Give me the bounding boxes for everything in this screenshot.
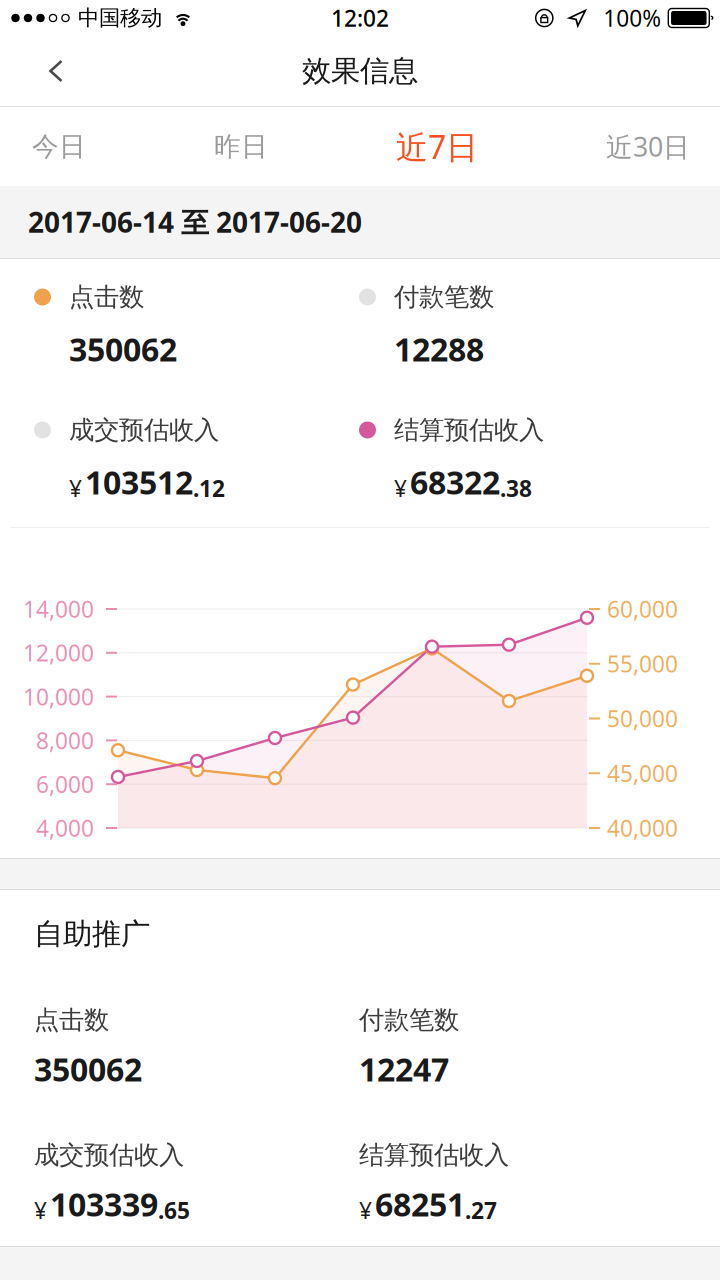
staticText: 12:02: [331, 3, 389, 33]
staticText: 68251: [375, 1183, 465, 1225]
staticText: .65: [158, 1195, 190, 1225]
button[interactable]: Back: [0, 36, 89, 106]
staticText: 10,000: [23, 681, 94, 712]
staticText: 8,000: [36, 725, 94, 755]
staticText: 2017-06-14 至 2017-06-20: [28, 203, 362, 241]
staticText: 50,000: [607, 703, 678, 733]
staticText: 103339: [50, 1183, 158, 1225]
staticText: .27: [465, 1195, 497, 1225]
staticText: 昨日: [214, 130, 268, 163]
staticText: 14,000: [23, 594, 94, 624]
staticText: 付款笔数: [359, 1004, 459, 1035]
staticText: 成交预估收入: [69, 414, 219, 445]
staticText: 45,000: [607, 758, 678, 788]
staticText: 近7日: [396, 125, 478, 168]
staticText: 100%: [603, 3, 661, 33]
button[interactable]: 近7日: [396, 107, 478, 186]
staticText: .38: [500, 473, 532, 503]
staticText: 成交预估收入: [34, 1139, 184, 1170]
staticText: .12: [193, 473, 225, 503]
button[interactable]: 今日: [32, 107, 86, 186]
staticText: 结算预估收入: [394, 414, 544, 445]
staticText: 68322: [410, 461, 500, 503]
staticText: 40,000: [607, 813, 678, 843]
staticText: 点击数: [69, 281, 144, 312]
button[interactable]: 昨日: [214, 107, 268, 186]
staticText: 6,000: [36, 769, 94, 799]
staticText: 近30日: [606, 129, 690, 164]
staticText: 103512: [85, 461, 193, 503]
staticText: 350062: [34, 1048, 142, 1090]
staticText: 350062: [69, 328, 177, 370]
staticText: ¥: [34, 1195, 47, 1225]
staticText: ¥: [394, 473, 407, 503]
staticText: 12247: [359, 1048, 449, 1090]
button[interactable]: 近30日: [606, 107, 690, 186]
staticText: ¥: [359, 1195, 372, 1225]
staticText: 4,000: [36, 813, 94, 843]
staticText: 结算预估收入: [359, 1139, 509, 1170]
staticText: 付款笔数: [394, 281, 494, 312]
staticText: 自助推广: [34, 916, 150, 952]
staticText: 中国移动: [78, 5, 162, 31]
staticText: 今日: [32, 130, 86, 163]
staticText: 效果信息: [302, 53, 418, 89]
staticText: 55,000: [607, 649, 678, 679]
staticText: 点击数: [34, 1004, 109, 1035]
staticText: 12,000: [23, 638, 94, 668]
staticText: ¥: [69, 473, 82, 503]
staticText: 12288: [394, 328, 484, 370]
staticText: 60,000: [607, 594, 678, 624]
